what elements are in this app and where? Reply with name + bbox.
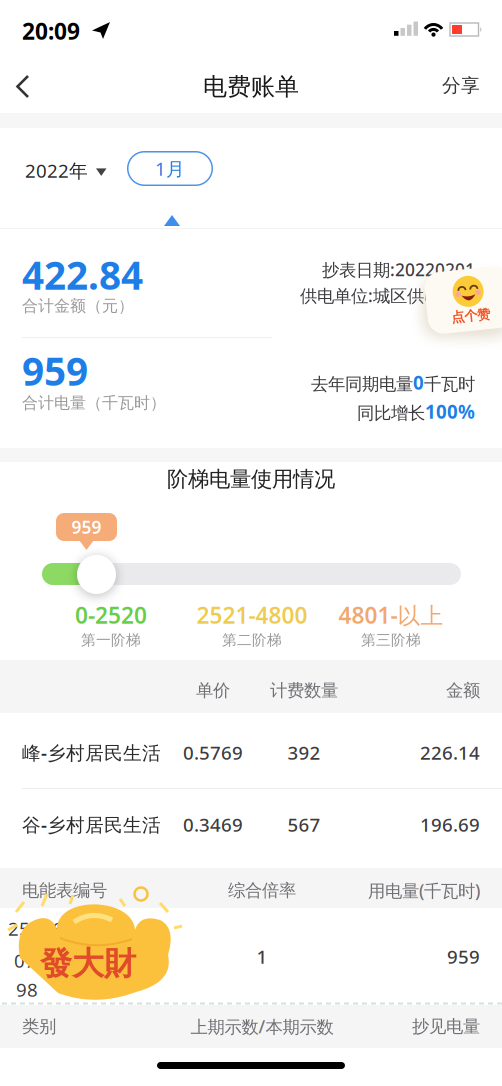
staticText: 250061400 (8, 916, 107, 941)
button[interactable]: 2022年 (25, 158, 107, 183)
staticText: 4801-以上 (338, 600, 443, 630)
staticText: 电费账单 (203, 72, 299, 101)
staticText: 谷-乡村居民生活 (22, 812, 161, 837)
staticText: 阶梯电量使用情况 (167, 466, 335, 492)
staticText: 0.3469 (183, 812, 243, 837)
staticText: 072209871 (14, 948, 113, 973)
staticText: 峰-乡村居民生活 (22, 740, 161, 765)
staticText: 抄表日期:20220201 (322, 258, 475, 281)
staticText: 抄见电量 (412, 1016, 480, 1037)
staticText: 分享 (442, 74, 480, 97)
staticText: 第一阶梯 (81, 631, 141, 649)
staticText: 金额 (446, 680, 480, 701)
button[interactable]: 1月 (127, 151, 213, 186)
staticText: 567 (287, 812, 320, 837)
staticText: 合计金额（元） (22, 296, 134, 316)
staticText: 422.84 (22, 249, 143, 300)
staticText: 合计电量（千瓦时） (22, 393, 166, 413)
staticText: 第三阶梯 (361, 631, 421, 649)
staticText: 计费数量 (270, 680, 338, 701)
staticText: 98 (16, 977, 38, 1002)
staticText: 上期示数/本期示数 (190, 1015, 333, 1038)
staticText: 0 (413, 370, 424, 395)
staticText: 392 (287, 740, 320, 765)
staticText: 综合倍率 (228, 880, 296, 901)
staticText: 供电单位:城区供电公司 (300, 284, 475, 307)
staticText: 100% (425, 399, 475, 424)
staticText: 0.5769 (183, 740, 243, 765)
staticText: 2521-4800 (196, 600, 307, 630)
staticText: 单价 (196, 680, 230, 701)
staticText: 千瓦时 (424, 373, 475, 395)
staticText: 1 (256, 944, 267, 969)
staticText: 959 (447, 944, 480, 969)
staticText: 用电量(千瓦时) (368, 879, 480, 902)
staticText: 發大財 (40, 944, 136, 983)
staticText: 20:09 (22, 16, 80, 46)
staticText: 电能表编号 (22, 880, 107, 901)
staticText: 196.69 (420, 812, 480, 837)
button[interactable]: 分享 (442, 74, 480, 97)
staticText: 959 (22, 345, 88, 396)
staticText: 第二阶梯 (222, 631, 282, 649)
staticText: 点个赞 (449, 308, 488, 324)
staticText: 同比增长 (357, 402, 425, 424)
staticText: 类别 (22, 1016, 56, 1037)
staticText: 2022年 (25, 158, 88, 183)
button[interactable]: Back (0, 0, 44, 44)
staticText: 0-2520 (75, 600, 147, 630)
staticText: 去年同期电量 (311, 373, 413, 395)
staticText: 1月 (155, 156, 185, 181)
staticText: 959 (71, 515, 101, 538)
staticText: 226.14 (420, 740, 480, 765)
